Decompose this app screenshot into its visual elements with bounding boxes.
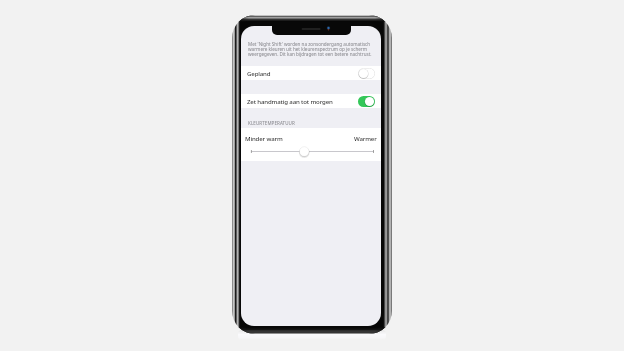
staticText: Warmer: [354, 134, 377, 142]
button[interactable]: Zet handmatig aan tot morgen: [241, 94, 381, 108]
button[interactable]: Gepland: [241, 66, 381, 80]
staticText: Zet handmatig aan tot morgen: [247, 97, 333, 105]
button[interactable]: Uit: [358, 68, 375, 79]
button[interactable]: Kleurtemperatuur: [241, 146, 381, 157]
button[interactable]: Aan: [358, 96, 375, 107]
staticText: KLEURTEMPERATUUR: [248, 120, 295, 126]
staticText: Minder warm: [245, 134, 283, 142]
staticText: Gepland: [247, 69, 271, 77]
staticText: Met 'Night Shift' worden na zonsondergan…: [248, 41, 374, 57]
